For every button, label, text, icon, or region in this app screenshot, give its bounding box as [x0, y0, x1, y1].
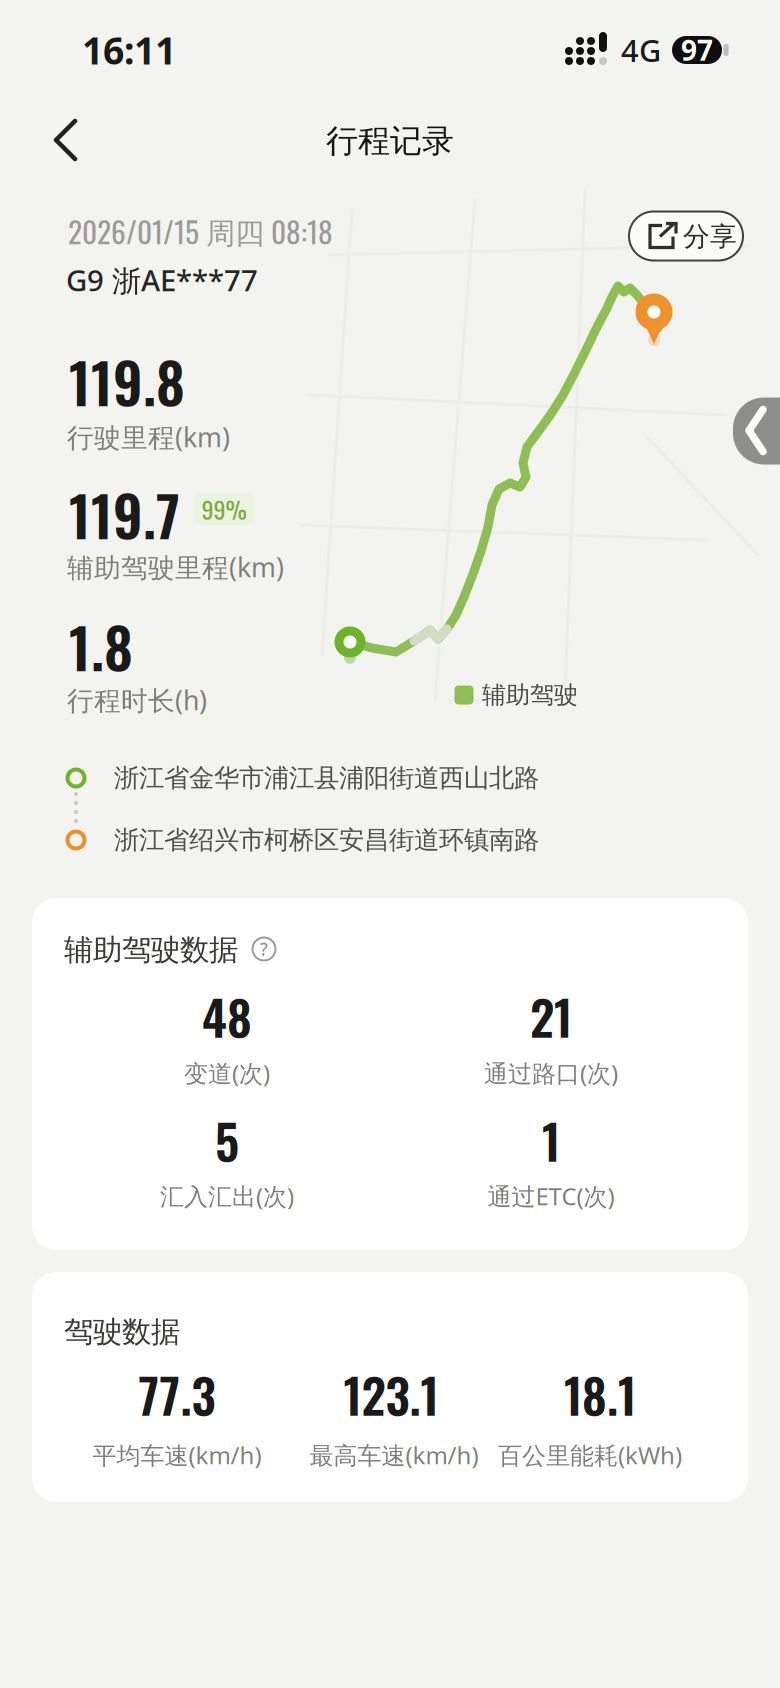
- staticText: 97: [681, 31, 713, 69]
- staticText: 浙江省绍兴市柯桥区安昌街道环镇南路: [114, 824, 539, 855]
- staticText: 2026/01/15 周四 08:18: [68, 209, 333, 253]
- staticText: 119.8: [69, 339, 185, 422]
- staticText: 5: [215, 1104, 239, 1175]
- staticText: 1.8: [69, 604, 133, 687]
- staticText: 百公里能耗(kWh): [498, 1439, 682, 1471]
- staticText: 最高车速(km/h): [309, 1439, 478, 1471]
- staticText: 行程时长(h): [67, 682, 207, 718]
- staticText: 18.1: [564, 1358, 636, 1429]
- staticText: 行程记录: [326, 121, 454, 161]
- button[interactable]: ?: [252, 937, 275, 960]
- staticText: 辅助驾驶里程(km): [67, 549, 284, 585]
- staticText: 浙江省金华市浦江县浦阳街道西山北路: [114, 762, 539, 793]
- button[interactable]: 分享: [629, 211, 743, 260]
- staticText: 通过ETC(次): [487, 1180, 614, 1212]
- staticText: 21: [530, 980, 572, 1051]
- staticText: 通过路口(次): [484, 1057, 618, 1089]
- staticText: 驾驶数据: [64, 1314, 180, 1350]
- staticText: 分享: [683, 220, 737, 253]
- staticText: 77.3: [138, 1358, 215, 1429]
- staticText: 辅助驾驶数据: [64, 932, 238, 968]
- staticText: 辅助驾驶: [482, 680, 578, 710]
- staticText: 行驶里程(km): [67, 419, 230, 455]
- staticText: G9 浙AE***77: [66, 260, 258, 299]
- staticText: 48: [202, 980, 252, 1051]
- button[interactable]: [733, 397, 780, 464]
- staticText: ?: [260, 937, 268, 960]
- staticText: 123.1: [343, 1358, 438, 1429]
- staticText: 1: [542, 1104, 560, 1175]
- staticText: 99%: [201, 491, 246, 527]
- staticText: 4G: [621, 30, 661, 70]
- staticText: 119.7: [69, 472, 180, 555]
- button[interactable]: [28, 102, 104, 178]
- staticText: 汇入汇出(次): [160, 1180, 294, 1212]
- staticText: 变道(次): [184, 1057, 270, 1089]
- staticText: 16:11: [82, 25, 176, 75]
- staticText: 平均车速(km/h): [92, 1439, 261, 1471]
